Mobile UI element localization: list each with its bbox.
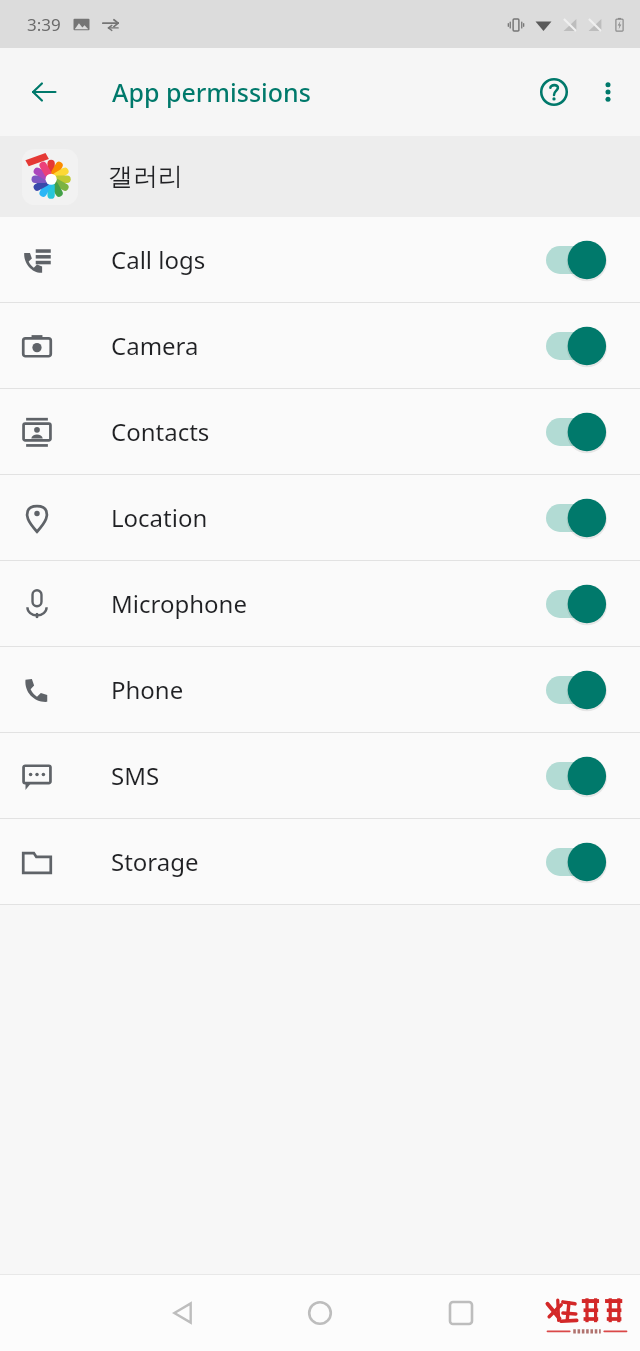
staticText: App permissions	[112, 75, 311, 109]
button[interactable]: Contacts permission toggle	[546, 408, 618, 456]
button[interactable]: Camera permission toggle	[546, 322, 618, 370]
button[interactable]: Contacts	[0, 389, 640, 474]
button[interactable]: Location	[0, 475, 640, 560]
staticText: Phone	[111, 673, 546, 706]
staticText: 갤러리	[108, 161, 183, 192]
button[interactable]: Back	[152, 1282, 214, 1344]
button[interactable]: Microphone	[0, 561, 640, 646]
staticText: Call logs	[111, 243, 546, 276]
button[interactable]: 갤러리	[0, 136, 640, 217]
staticText: 3:39	[27, 13, 61, 36]
button[interactable]: Microphone permission toggle	[546, 580, 618, 628]
button[interactable]: More options	[582, 66, 634, 118]
button[interactable]: Camera	[0, 303, 640, 388]
staticText: Storage	[111, 845, 546, 878]
staticText: Location	[111, 501, 546, 534]
button[interactable]: Location permission toggle	[546, 494, 618, 542]
staticText: Contacts	[111, 415, 546, 448]
button[interactable]: Help	[526, 64, 582, 120]
button[interactable]: Storage	[0, 819, 640, 904]
button[interactable]: Back	[16, 64, 72, 120]
staticText: Microphone	[111, 587, 546, 620]
button[interactable]: Storage permission toggle	[546, 838, 618, 886]
button[interactable]: Recents	[430, 1282, 492, 1344]
staticText: SMS	[111, 759, 546, 792]
button[interactable]: Phone	[0, 647, 640, 732]
button[interactable]: Phone permission toggle	[546, 666, 618, 714]
button[interactable]: Home	[289, 1282, 351, 1344]
button[interactable]: Call logs permission toggle	[546, 236, 618, 284]
staticText: Camera	[111, 329, 546, 362]
button[interactable]: Call logs	[0, 217, 640, 302]
button[interactable]: SMS permission toggle	[546, 752, 618, 800]
button[interactable]: SMS	[0, 733, 640, 818]
